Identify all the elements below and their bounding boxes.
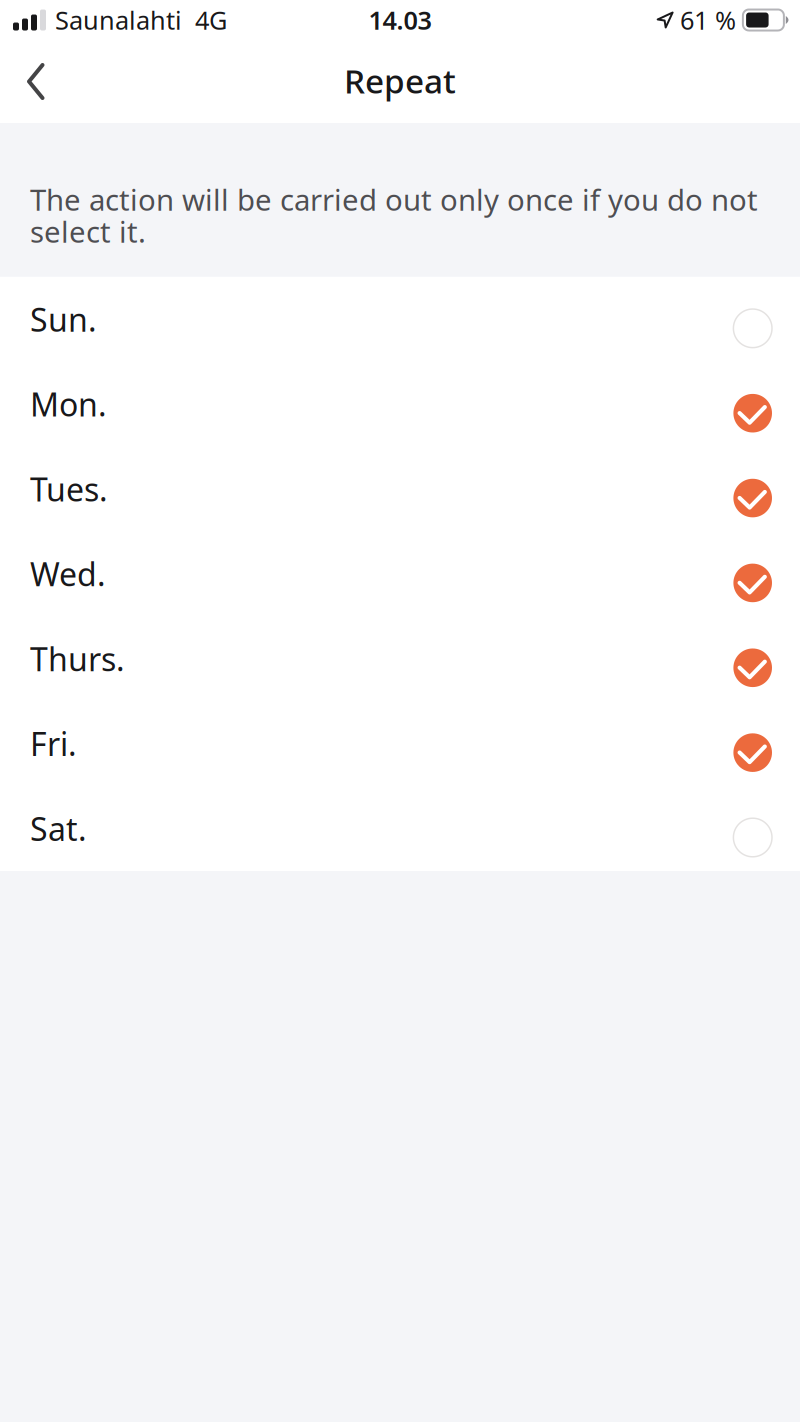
staticText: 14.03 [368, 3, 431, 37]
button[interactable]: Wed. [0, 531, 800, 616]
staticText: The action will be carried out only once… [30, 180, 758, 251]
button[interactable]: Mon. [0, 362, 800, 447]
button[interactable]: Tues. [0, 447, 800, 531]
staticText: Sun. [30, 298, 97, 341]
staticText: Mon. [30, 383, 107, 425]
staticText: 4G [195, 3, 227, 37]
staticText: Thurs. [30, 637, 125, 680]
button[interactable]: Fri. [0, 701, 800, 786]
staticText: Sat. [30, 807, 87, 850]
button[interactable]: Sat. [0, 786, 800, 871]
staticText: Saunalahti [55, 3, 182, 37]
staticText: Repeat [344, 58, 456, 103]
staticText: Tues. [30, 468, 108, 510]
staticText: 61 % [680, 3, 736, 37]
button[interactable]: Back [0, 40, 66, 123]
staticText: Fri. [30, 722, 77, 765]
button[interactable]: Thurs. [0, 616, 800, 701]
staticText: Wed. [30, 553, 106, 595]
button[interactable]: Sun. [0, 277, 800, 362]
